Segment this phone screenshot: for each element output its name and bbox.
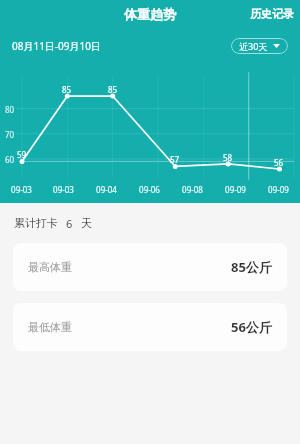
staticText: 体重趋势 — [124, 6, 176, 22]
staticText: 57 — [170, 154, 180, 165]
other: Expand range selector — [273, 44, 280, 48]
staticText: 80 — [5, 104, 15, 115]
staticText: 09-03 — [53, 184, 74, 195]
staticText: 累计打卡 — [14, 216, 58, 230]
staticText: 最高体重 — [28, 260, 72, 274]
staticText: 08月11日-09月10日 — [12, 39, 101, 53]
staticText: 6 — [66, 216, 73, 231]
staticText: 09-09 — [225, 184, 246, 195]
staticText: 56公斤 — [231, 318, 272, 336]
button[interactable]: 最高体重 — [13, 243, 287, 291]
staticText: 最低体重 — [28, 320, 72, 334]
staticText: 70 — [5, 129, 15, 140]
staticText: 历史记录 — [250, 7, 294, 21]
staticText: 近30天 — [239, 40, 268, 52]
staticText: 09-06 — [139, 184, 160, 195]
staticText: 09-08 — [182, 184, 203, 195]
staticText: 58 — [223, 152, 233, 163]
staticText: 59 — [17, 149, 27, 160]
staticText: 85 — [108, 84, 118, 95]
staticText: 09-09 — [268, 184, 289, 195]
button[interactable]: 历史记录 — [244, 2, 300, 26]
button[interactable]: 最低体重 — [13, 303, 287, 351]
staticText: 85公斤 — [231, 258, 272, 276]
button[interactable]: 近30天 — [231, 38, 288, 54]
staticText: 09-04 — [96, 184, 117, 195]
staticText: 56 — [274, 157, 284, 168]
staticText: 09-03 — [11, 184, 32, 195]
staticText: 60 — [5, 154, 15, 165]
staticText: 天 — [81, 216, 92, 230]
staticText: 85 — [62, 84, 72, 95]
